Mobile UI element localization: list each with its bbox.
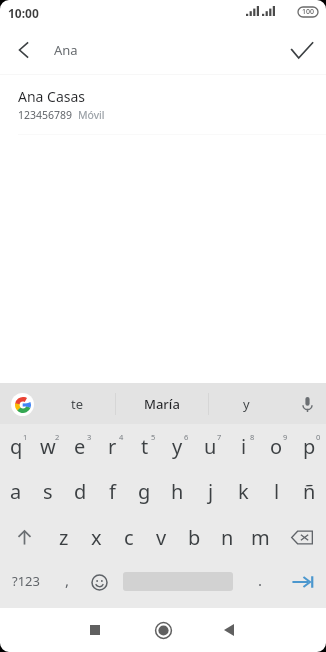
button[interactable]: o xyxy=(260,424,293,470)
staticText: d xyxy=(74,478,87,505)
staticText: j xyxy=(208,478,214,505)
button[interactable]: te xyxy=(40,383,115,424)
button[interactable]: c xyxy=(112,514,145,560)
staticText: b xyxy=(188,524,201,551)
button[interactable]: Ana Casas xyxy=(0,75,326,135)
staticText: María xyxy=(144,395,180,413)
staticText: m xyxy=(251,524,270,551)
button[interactable]: a xyxy=(0,469,32,515)
button[interactable]: e xyxy=(64,424,96,470)
button[interactable]: Back xyxy=(195,608,263,652)
staticText: 123456789 xyxy=(18,108,73,122)
button[interactable]: d xyxy=(64,469,96,515)
button[interactable]: w xyxy=(32,424,64,470)
button[interactable]: h xyxy=(161,469,194,515)
button[interactable]: ñ xyxy=(293,469,326,515)
button[interactable]: ?123 xyxy=(0,559,52,605)
staticText: x xyxy=(91,524,102,551)
staticText: i xyxy=(241,433,247,460)
button[interactable]: Done xyxy=(278,26,326,74)
button[interactable]: l xyxy=(260,469,293,515)
staticText: p xyxy=(303,433,316,460)
staticText: n xyxy=(221,524,234,551)
staticText: , xyxy=(65,570,70,590)
staticText: 0 xyxy=(316,432,321,442)
staticText: c xyxy=(124,524,134,551)
button[interactable]: Voice input xyxy=(292,389,322,419)
staticText: g xyxy=(138,478,151,505)
staticText: 100 xyxy=(302,7,315,17)
staticText: 8 xyxy=(250,432,255,442)
staticText: w xyxy=(40,433,56,460)
staticText: Ana Casas xyxy=(18,87,86,106)
staticText: 3 xyxy=(87,432,92,442)
staticText: s xyxy=(43,478,53,505)
staticText: 2 xyxy=(55,432,60,442)
button[interactable]: n xyxy=(211,514,244,560)
button[interactable]: q xyxy=(0,424,32,470)
staticText: 10:00 xyxy=(8,5,39,21)
button[interactable]: Emoji xyxy=(82,559,116,605)
button[interactable]: k xyxy=(227,469,260,515)
button[interactable]: Shift xyxy=(0,514,48,560)
staticText: l xyxy=(274,478,280,505)
staticText: te xyxy=(71,395,84,413)
button[interactable]: b xyxy=(178,514,211,560)
staticText: q xyxy=(10,433,23,460)
button[interactable]: t xyxy=(128,424,161,470)
staticText: ñ xyxy=(303,478,316,505)
staticText: e xyxy=(74,433,86,460)
staticText: 9 xyxy=(283,432,288,442)
button[interactable]: j xyxy=(194,469,227,515)
button[interactable]: u xyxy=(194,424,227,470)
button[interactable]: z xyxy=(48,514,80,560)
staticText: h xyxy=(171,478,184,505)
staticText: z xyxy=(59,524,69,551)
button[interactable]: y xyxy=(209,383,284,424)
staticText: 4 xyxy=(119,432,124,442)
staticText: 5 xyxy=(151,432,156,442)
button[interactable]: x xyxy=(80,514,112,560)
staticText: o xyxy=(270,433,283,460)
staticText: y xyxy=(172,433,183,460)
staticText: f xyxy=(109,478,116,505)
staticText: 1 xyxy=(23,432,28,442)
button[interactable]: g xyxy=(128,469,161,515)
staticText: ?123 xyxy=(12,572,40,590)
button[interactable]: y xyxy=(161,424,194,470)
staticText: u xyxy=(204,433,217,460)
button[interactable]: . xyxy=(243,559,277,605)
staticText: v xyxy=(156,524,167,551)
staticText: Móvil xyxy=(78,108,105,122)
button[interactable]: f xyxy=(96,469,128,515)
button[interactable]: m xyxy=(244,514,277,560)
staticText: y xyxy=(243,395,250,413)
button[interactable]: Recent apps xyxy=(61,608,129,652)
button[interactable]: Back xyxy=(0,26,48,74)
button[interactable]: Home xyxy=(129,608,197,652)
button[interactable]: Backspace xyxy=(277,514,326,560)
staticText: . xyxy=(258,570,263,590)
button[interactable]: v xyxy=(145,514,178,560)
button[interactable]: Enter xyxy=(280,559,326,605)
staticText: k xyxy=(238,478,249,505)
button[interactable]: , xyxy=(52,559,82,605)
button[interactable]: s xyxy=(32,469,64,515)
button[interactable]: r xyxy=(96,424,128,470)
button[interactable]: María xyxy=(116,383,208,424)
button[interactable]: p xyxy=(293,424,326,470)
button[interactable]: Google xyxy=(6,388,38,420)
staticText: 6 xyxy=(184,432,189,442)
button[interactable]: i xyxy=(227,424,260,470)
staticText: r xyxy=(108,433,117,460)
staticText: Ana xyxy=(54,41,78,59)
staticText: a xyxy=(10,478,22,505)
staticText: 7 xyxy=(217,432,222,442)
staticText: t xyxy=(141,433,149,460)
